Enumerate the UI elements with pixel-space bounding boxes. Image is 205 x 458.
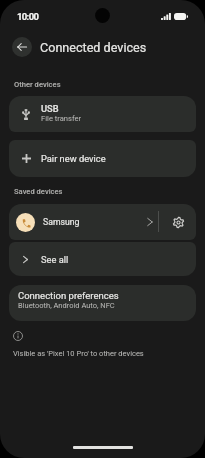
staticText: Pair new device [41,153,106,164]
button[interactable]: USB [9,96,196,132]
staticText: Bluetooth, Android Auto, NFC [18,301,115,310]
staticText: Connected devices [40,40,147,55]
button[interactable] [9,204,140,240]
button[interactable]: Device settings [164,208,192,236]
staticText: Visible as 'Pixel 10 Pro' to other devic… [13,349,144,358]
staticText: USB [41,103,59,114]
staticText: Samsung [43,217,80,227]
staticText: Saved devices [14,187,63,196]
staticText: 10:00 [17,11,39,22]
staticText: See all [41,254,69,265]
staticText: Connection preferences [18,290,119,301]
staticText: Other devices [14,80,61,89]
button[interactable]: See all [9,242,196,276]
button[interactable]: Pair new device [9,140,196,177]
staticText: File transfer [41,114,82,123]
button[interactable]: Connection preferences [9,285,196,321]
button[interactable]: Back [12,37,32,57]
